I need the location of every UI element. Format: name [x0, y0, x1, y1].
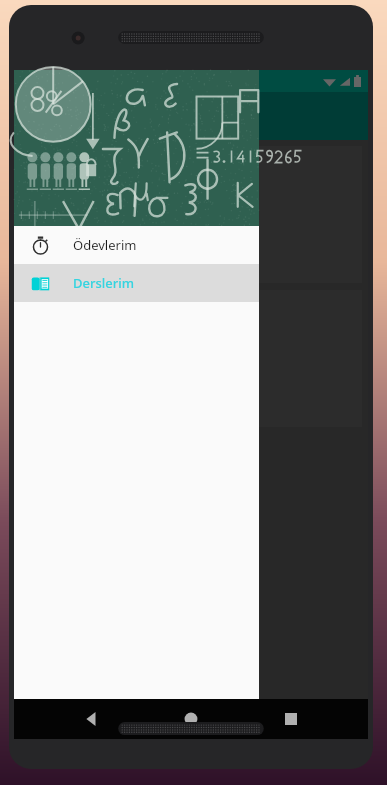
button[interactable]: Türkçe — [20, 146, 362, 283]
button[interactable]: Recent apps — [269, 699, 313, 739]
staticText: 1 — [188, 178, 195, 194]
button[interactable]: Timer — [147, 198, 186, 237]
staticText: Türkçe — [30, 153, 352, 173]
button[interactable]: Home — [169, 699, 213, 739]
staticText: Coğrafya — [30, 297, 352, 317]
staticText: Ödevlerim — [73, 236, 137, 254]
button[interactable]: Ödevlerim — [14, 226, 259, 264]
staticText: Derslerim — [73, 274, 135, 292]
button[interactable]: Derslerim — [14, 264, 259, 302]
button[interactable]: Coğrafya — [20, 290, 362, 427]
button[interactable]: Back — [70, 699, 114, 739]
staticText: 1:36 — [22, 74, 44, 89]
button[interactable]: Cancel — [196, 198, 235, 237]
